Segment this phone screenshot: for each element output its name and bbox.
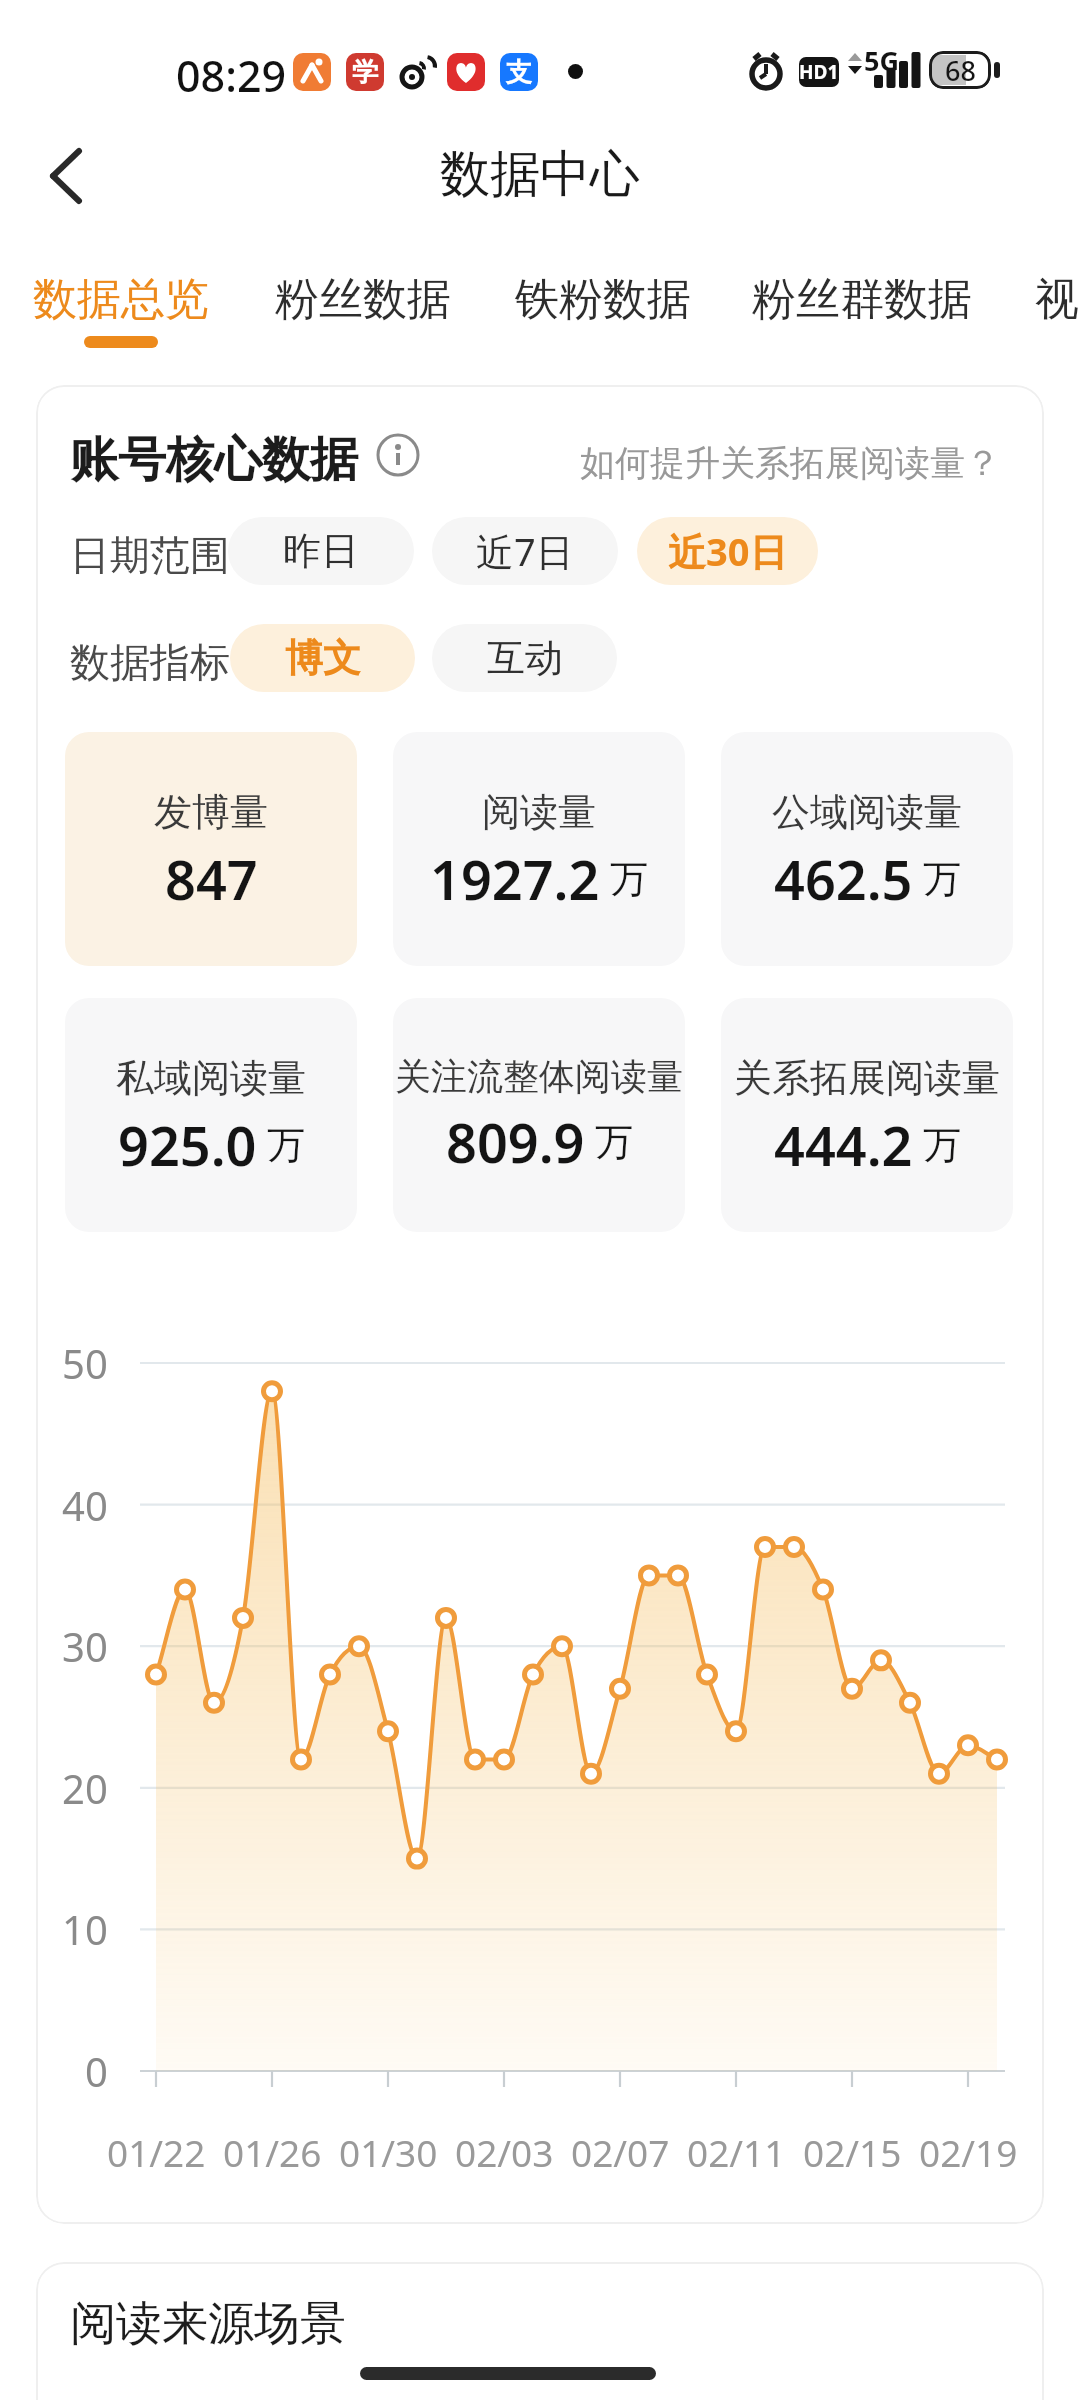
staticText: 5G [864, 42, 899, 79]
staticText: 10 [62, 1902, 108, 1956]
staticText: 数据指标 [70, 637, 230, 687]
button[interactable]: 视 [1035, 272, 1079, 327]
staticText: 万 [610, 855, 648, 903]
button[interactable]: 昨日 [228, 517, 414, 585]
staticText: 68 [945, 52, 976, 89]
staticText: 30 [62, 1619, 108, 1673]
staticText: 账号核心数据 [70, 430, 358, 490]
button[interactable] [48, 146, 88, 206]
staticText: 01/22 [107, 2127, 206, 2177]
staticText: 1927.2 [430, 842, 600, 916]
staticText: 02/19 [919, 2127, 1018, 2177]
button[interactable]: 近30日 [637, 517, 818, 585]
staticText: 阅读来源场景 [70, 2295, 346, 2353]
staticText: 公域阅读量 [772, 788, 962, 836]
staticText: 私域阅读量 [116, 1054, 306, 1102]
staticText: 学 [352, 56, 378, 89]
staticText: 0 [85, 2044, 108, 2098]
staticText: 462.5 [774, 842, 913, 916]
button[interactable]: 铁粉数据 [515, 272, 691, 327]
staticText: 02/11 [687, 2127, 786, 2177]
staticText: 博文 [285, 634, 361, 682]
staticText: 万 [595, 1118, 633, 1166]
staticText: 支 [506, 56, 532, 89]
staticText: 日期范围 [70, 530, 230, 580]
button[interactable]: 数据总览 [33, 272, 209, 327]
staticText: 444.2 [774, 1108, 913, 1182]
staticText: HD1 [799, 59, 839, 85]
button[interactable]: 公域阅读量 [721, 732, 1013, 966]
button[interactable]: 关系拓展阅读量 [721, 998, 1013, 1232]
staticText: 02/07 [571, 2127, 670, 2177]
button[interactable]: 私域阅读量 [65, 998, 357, 1232]
staticText: 发博量 [154, 788, 268, 836]
staticText: 近7日 [476, 525, 574, 577]
staticText: 万 [923, 855, 961, 903]
staticText: 数据中心 [440, 143, 640, 206]
staticText: 50 [62, 1336, 108, 1390]
staticText: 847 [165, 842, 258, 916]
button[interactable]: 关注流整体阅读量 [393, 998, 685, 1232]
staticText: 925.0 [118, 1108, 257, 1182]
button[interactable]: 如何提升关系拓展阅读量？ [506, 441, 1000, 485]
staticText: 如何提升关系拓展阅读量？ [580, 441, 1000, 485]
button[interactable]: 互动 [432, 624, 617, 692]
staticText: 万 [267, 1121, 305, 1169]
staticText: 40 [62, 1478, 108, 1532]
staticText: 近30日 [668, 525, 788, 577]
staticText: 万 [923, 1121, 961, 1169]
staticText: 01/26 [223, 2127, 322, 2177]
staticText: 阅读量 [482, 788, 596, 836]
staticText: 关系拓展阅读量 [734, 1054, 1000, 1102]
button[interactable]: 近7日 [432, 517, 618, 585]
staticText: 01/30 [339, 2127, 438, 2177]
staticText: 互动 [487, 634, 563, 682]
staticText: 809.9 [446, 1105, 585, 1179]
button[interactable]: 粉丝数据 [275, 272, 451, 327]
button[interactable]: 博文 [230, 624, 415, 692]
staticText: 20 [62, 1761, 108, 1815]
button[interactable]: 阅读量 [393, 732, 685, 966]
staticText: 02/15 [803, 2127, 902, 2177]
staticText: 关注流整体阅读量 [395, 1054, 683, 1099]
staticText: 08:29 [176, 46, 287, 105]
button[interactable]: 粉丝群数据 [752, 272, 972, 327]
staticText: 昨日 [283, 527, 359, 575]
staticText: 02/03 [455, 2127, 554, 2177]
button[interactable]: 发博量 [65, 732, 357, 966]
